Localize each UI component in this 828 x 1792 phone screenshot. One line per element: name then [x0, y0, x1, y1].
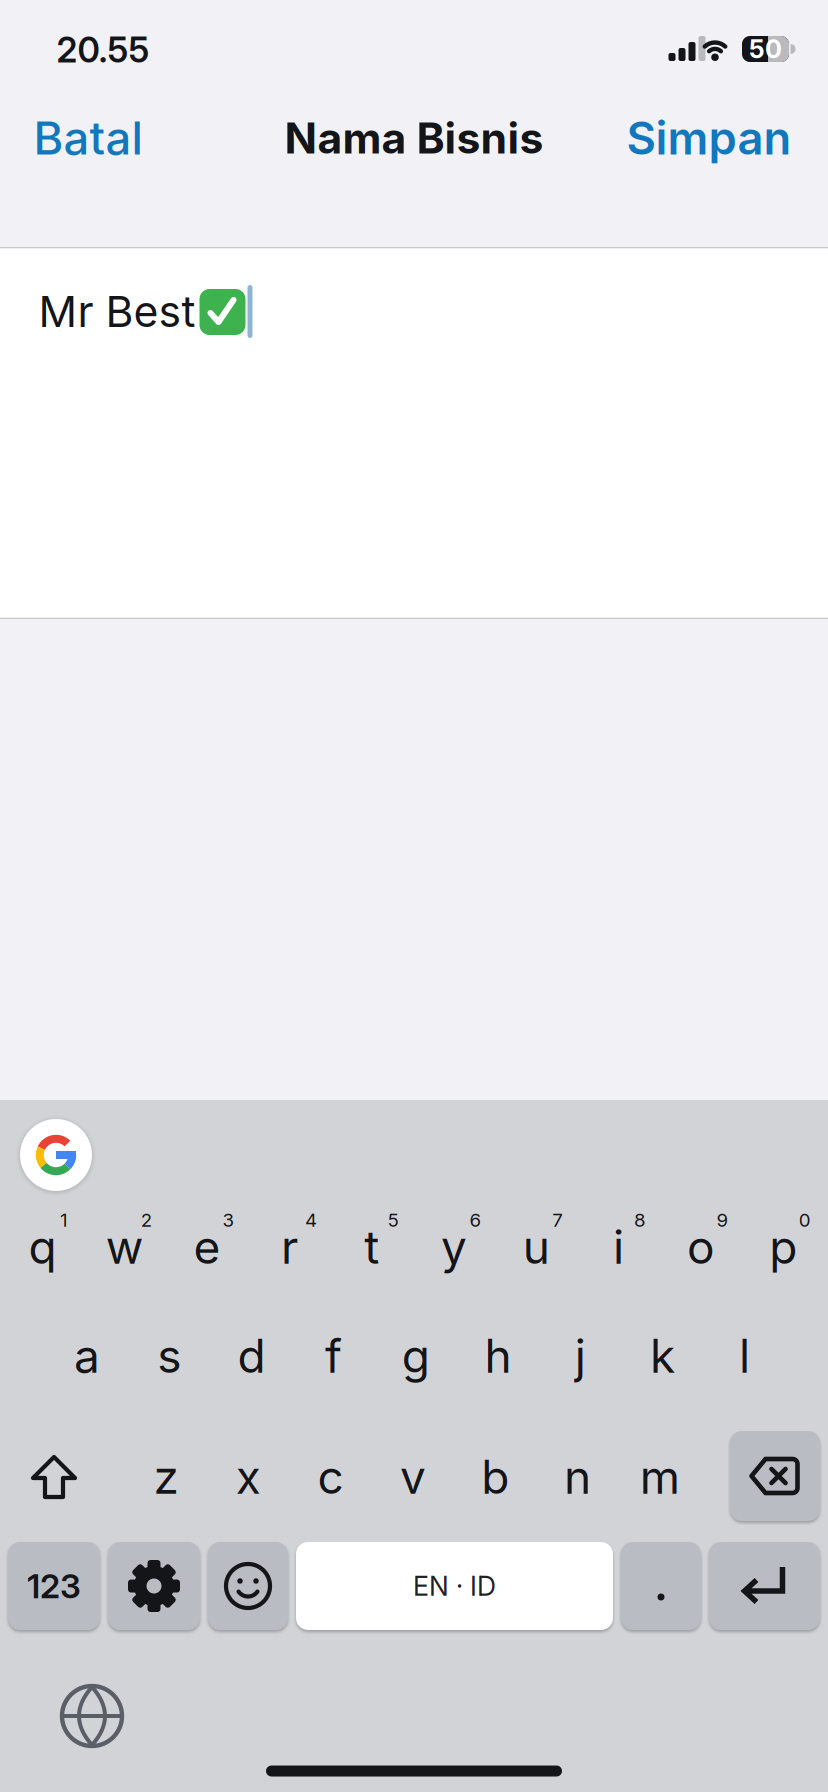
button[interactable]: d [211, 1306, 291, 1406]
button[interactable]: Nama Bisnis [0, 248, 828, 617]
staticText: z [153, 1449, 178, 1505]
staticText: l [739, 1328, 750, 1384]
button[interactable]: s [129, 1306, 209, 1406]
staticText: Batal [33, 111, 142, 165]
staticText: d [237, 1328, 265, 1384]
button[interactable]: e [167, 1197, 247, 1297]
button[interactable]: f [294, 1306, 374, 1406]
button[interactable]: g [376, 1306, 456, 1406]
button[interactable]: y [414, 1197, 494, 1297]
button[interactable]: c [291, 1427, 371, 1527]
button[interactable]: Period [621, 1542, 701, 1630]
staticText: c [318, 1449, 344, 1505]
staticText: 9 [716, 1209, 728, 1231]
staticText: EN · ID [413, 1570, 496, 1602]
button[interactable]: b [455, 1427, 535, 1527]
staticText: Mr Best [38, 286, 195, 337]
button[interactable]: l [705, 1306, 785, 1406]
staticText: 5 [388, 1209, 399, 1231]
staticText: 0 [799, 1209, 811, 1231]
staticText: t [364, 1219, 379, 1275]
staticText: x [236, 1449, 261, 1505]
staticText: q [28, 1219, 56, 1275]
button[interactable]: Batal [33, 111, 142, 165]
button[interactable]: p [743, 1197, 823, 1297]
button[interactable]: i [579, 1197, 659, 1297]
button[interactable]: k [622, 1306, 702, 1406]
staticText: u [523, 1219, 550, 1275]
button[interactable]: o [661, 1197, 741, 1297]
button[interactable]: m [620, 1427, 700, 1527]
button[interactable]: Shift [14, 1432, 94, 1522]
staticText: 123 [27, 1566, 81, 1606]
staticText: m [640, 1449, 680, 1505]
button[interactable]: a [47, 1306, 127, 1406]
staticText: Nama Bisnis [284, 112, 543, 164]
staticText: b [481, 1449, 509, 1505]
staticText: 50 [749, 34, 782, 64]
staticText: y [441, 1219, 467, 1275]
button[interactable]: Settings [108, 1542, 200, 1630]
button[interactable]: Emoji [208, 1542, 288, 1630]
staticText: k [650, 1328, 675, 1384]
staticText: v [400, 1449, 426, 1505]
staticText: w [106, 1219, 144, 1275]
button[interactable]: t [332, 1197, 412, 1297]
button[interactable]: Space [296, 1542, 613, 1630]
button[interactable]: Next keyboard [54, 1678, 130, 1754]
button[interactable]: x [208, 1427, 288, 1527]
staticText: s [157, 1328, 181, 1384]
staticText: g [402, 1328, 430, 1384]
staticText: 1 [60, 1209, 68, 1231]
button[interactable]: Return [709, 1542, 820, 1630]
button[interactable]: n [537, 1427, 617, 1527]
staticText: Simpan [626, 111, 791, 165]
button[interactable]: Simpan [626, 111, 791, 165]
staticText: f [325, 1328, 342, 1384]
button[interactable]: j [540, 1306, 620, 1406]
button[interactable]: r [249, 1197, 329, 1297]
button[interactable]: w [85, 1197, 165, 1297]
button[interactable]: Google [20, 1119, 92, 1191]
button[interactable]: Numbers [8, 1542, 100, 1630]
button[interactable]: v [373, 1427, 453, 1527]
staticText: e [194, 1219, 221, 1275]
staticText: 3 [223, 1209, 235, 1231]
button[interactable]: q [2, 1197, 82, 1297]
staticText: 8 [634, 1209, 646, 1231]
staticText: p [769, 1219, 797, 1275]
button[interactable]: Delete [730, 1431, 820, 1521]
staticText: n [564, 1449, 591, 1505]
staticText: 20.55 [56, 29, 149, 71]
button[interactable]: z [126, 1427, 206, 1527]
staticText: 4 [305, 1209, 317, 1231]
staticText: h [484, 1328, 511, 1384]
staticText: i [613, 1219, 624, 1275]
button[interactable]: u [496, 1197, 576, 1297]
staticText: j [575, 1328, 586, 1384]
staticText: 2 [141, 1209, 152, 1231]
staticText: o [687, 1219, 715, 1275]
staticText: r [281, 1219, 298, 1275]
button[interactable]: h [458, 1306, 538, 1406]
staticText: 6 [469, 1209, 481, 1231]
staticText: a [74, 1328, 100, 1384]
staticText: 7 [552, 1209, 563, 1231]
